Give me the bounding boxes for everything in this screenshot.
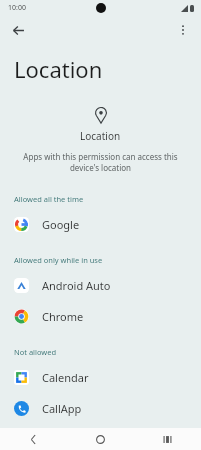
staticText: CallApp (42, 401, 82, 416)
button[interactable]: More options (171, 18, 195, 42)
button[interactable]: Recents (134, 428, 201, 450)
button[interactable]: Google (0, 209, 201, 240)
staticText: Chrome (42, 309, 84, 324)
button[interactable]: Calendar (0, 362, 201, 393)
button[interactable]: Back (6, 18, 30, 42)
button[interactable]: Chrome (0, 301, 201, 332)
button[interactable]: Android Auto (0, 270, 201, 301)
staticText: Google (42, 217, 80, 232)
staticText: 10:00 (8, 3, 26, 13)
staticText: Allowed all the time (14, 194, 84, 204)
staticText: Not allowed (14, 347, 57, 357)
button[interactable]: Home (67, 428, 134, 450)
staticText: Calendar (42, 370, 89, 385)
staticText: Location (80, 129, 121, 143)
staticText: Android Auto (42, 278, 111, 293)
staticText: Apps with this permission can access thi… (22, 151, 179, 173)
button[interactable]: Back (0, 428, 67, 450)
button[interactable]: CallApp (0, 393, 201, 424)
button[interactable]: Camera (0, 424, 201, 450)
staticText: Allowed only while in use (14, 255, 103, 265)
staticText: Location (14, 54, 103, 84)
